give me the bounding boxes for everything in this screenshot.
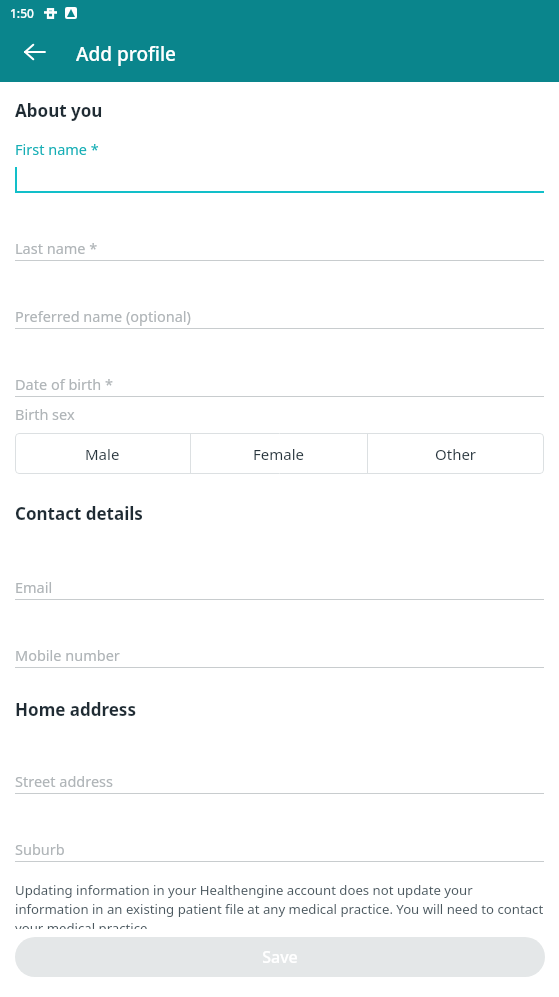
staticText: Updating information in your Healthengin… xyxy=(15,881,544,937)
button[interactable]: Date of birth * xyxy=(15,335,544,403)
staticText: Mobile number xyxy=(15,645,120,665)
staticText: About you xyxy=(15,99,103,122)
staticText: Date of birth * xyxy=(15,374,114,394)
button[interactable]: Last name * xyxy=(15,199,544,267)
staticText: Male xyxy=(85,444,120,464)
staticText: Street address xyxy=(15,771,113,791)
button[interactable]: Suburb xyxy=(15,800,544,868)
staticText: Other xyxy=(435,444,477,464)
staticText: Save xyxy=(262,946,298,968)
staticText: Female xyxy=(253,444,305,464)
staticText: First name * xyxy=(15,139,99,159)
button[interactable]: First name * xyxy=(15,131,544,199)
button[interactable]: Save xyxy=(15,937,545,977)
staticText: Suburb xyxy=(15,839,65,859)
button[interactable]: Back xyxy=(13,30,57,74)
staticText: Birth sex xyxy=(15,404,75,424)
staticText: 1:50 xyxy=(10,5,34,21)
staticText: Home address xyxy=(15,698,136,721)
staticText: Contact details xyxy=(15,502,143,525)
button[interactable]: Preferred name (optional) xyxy=(15,267,544,335)
button[interactable]: Street address xyxy=(15,732,544,800)
button[interactable]: Female xyxy=(191,433,367,474)
staticText: Email xyxy=(15,577,53,597)
staticText: Preferred name (optional) xyxy=(15,306,191,326)
staticText: Add profile xyxy=(76,41,176,67)
button[interactable]: Other xyxy=(368,433,544,474)
button[interactable]: Email xyxy=(15,538,544,606)
button[interactable]: Male xyxy=(15,433,190,474)
staticText: Last name * xyxy=(15,238,98,258)
button[interactable]: Mobile number xyxy=(15,606,544,674)
